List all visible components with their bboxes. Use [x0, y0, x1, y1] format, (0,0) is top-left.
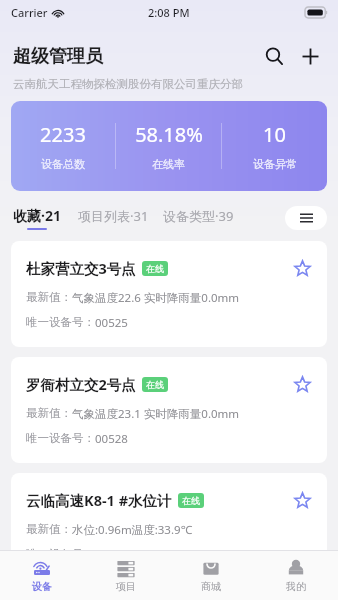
staticText: 设备异常	[253, 157, 297, 171]
staticText: 超级管理员	[13, 45, 256, 68]
button[interactable]: 收藏·21	[13, 206, 61, 230]
staticText: 2:08 PM	[148, 5, 190, 20]
staticText: 商城	[201, 580, 221, 593]
staticText: 我的	[286, 580, 306, 593]
button[interactable]: Add	[292, 38, 328, 74]
button[interactable]: Favorite	[289, 255, 315, 281]
staticText: 杜家营立交3号点	[26, 258, 136, 278]
button[interactable]: Filter menu	[285, 206, 327, 230]
staticText: 水位:0.96m温度:33.9℃	[72, 522, 192, 538]
button[interactable]: 杜家营立交3号点	[11, 241, 327, 347]
staticText: 项目	[116, 580, 136, 593]
staticText: 唯一设备号：	[26, 547, 95, 550]
staticText: 在线率	[152, 157, 185, 171]
staticText: 10	[263, 121, 286, 148]
staticText: 罗衙村立交2号点	[26, 374, 136, 394]
staticText: 最新值：	[26, 406, 72, 420]
button[interactable]: 商城	[168, 551, 253, 600]
staticText: 设备总数	[41, 157, 85, 171]
staticText: Carrier	[11, 5, 48, 20]
button[interactable]: 我的	[253, 551, 338, 600]
button[interactable]: 罗衙村立交2号点	[11, 357, 327, 463]
staticText: 2233	[40, 121, 86, 148]
button[interactable]: 云临高速K8-1 #水位计	[11, 473, 327, 550]
staticText: 在线	[182, 495, 200, 506]
staticText: 唯一设备号：	[26, 431, 95, 445]
staticText: 最新值：	[26, 522, 72, 536]
button[interactable]: Favorite	[289, 371, 315, 397]
staticText: 最新值：	[26, 290, 72, 304]
staticText: 云临高速K8-1 #水位计	[26, 490, 172, 510]
button[interactable]: 2233	[11, 101, 327, 191]
staticText: 云南航天工程物探检测股份有限公司重庆分部	[13, 77, 243, 91]
staticText: 00528	[95, 431, 128, 447]
button[interactable]: 设备类型·39	[163, 207, 234, 230]
staticText: 气象温度22.6 实时降雨量0.0mm	[72, 290, 240, 306]
button[interactable]: 项目	[84, 551, 168, 600]
staticText: 在线	[146, 379, 164, 390]
button[interactable]: 设备	[0, 551, 84, 600]
button[interactable]: Favorite	[289, 487, 315, 513]
staticText: 在线	[146, 263, 164, 274]
staticText: 设备	[32, 580, 52, 593]
button[interactable]: Search	[256, 38, 292, 74]
staticText: 唯一设备号：	[26, 315, 95, 329]
button[interactable]: 项目列表·31	[78, 207, 149, 230]
staticText: 收藏·21	[13, 206, 61, 225]
staticText: 58.18%	[135, 121, 203, 148]
staticText: 气象温度23.1 实时降雨量0.0mm	[72, 406, 240, 422]
staticText: 00525	[95, 315, 128, 331]
